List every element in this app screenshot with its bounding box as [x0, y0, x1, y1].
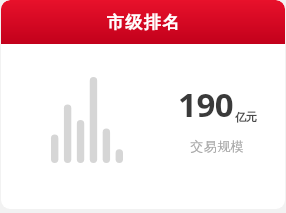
button[interactable]: 市级排名 [1, 0, 285, 209]
staticText: 190 [178, 82, 234, 127]
button[interactable]: 市级排名 [1, 0, 285, 44]
staticText: 亿元 [235, 110, 257, 124]
staticText: 交易规模 [190, 138, 244, 154]
staticText: 市级排名 [106, 12, 180, 33]
other: Bar chart [51, 77, 123, 163]
